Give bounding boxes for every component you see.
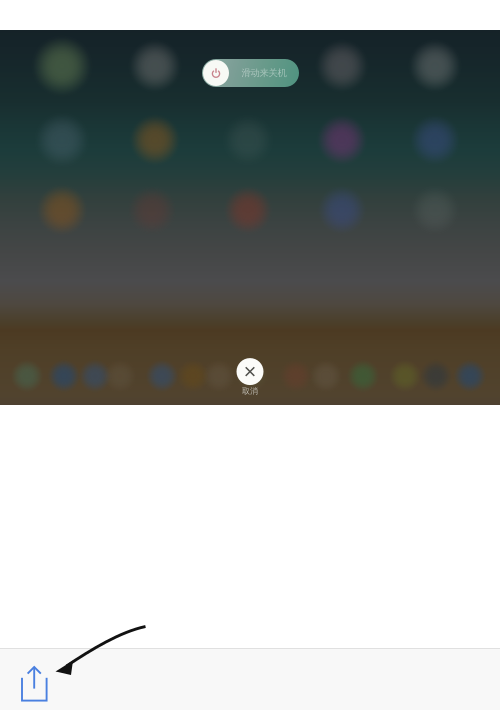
staticText: 滑动来关机 xyxy=(241,67,286,79)
button[interactable]: 滑动来关机 xyxy=(202,59,299,87)
button[interactable]: 取消 xyxy=(236,358,263,396)
staticText: 取消 xyxy=(242,386,258,396)
button[interactable]: Share xyxy=(0,648,58,708)
